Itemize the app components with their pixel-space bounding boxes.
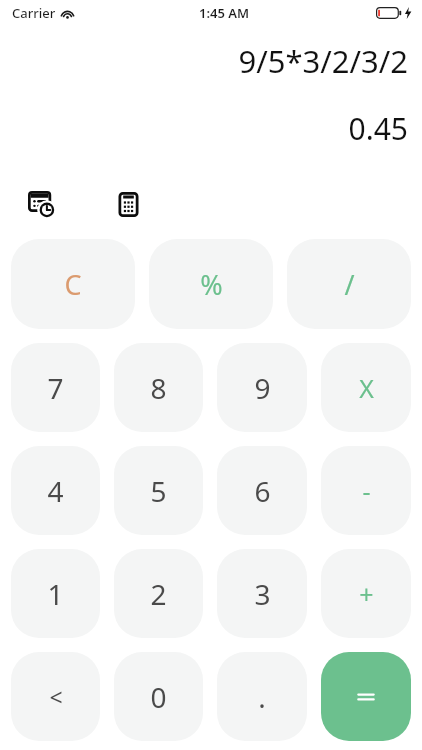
button[interactable]: 4	[11, 446, 100, 535]
button[interactable]: Equals	[321, 652, 411, 741]
staticText: 0.45	[0, 108, 408, 149]
staticText: 5	[150, 472, 167, 510]
staticText: 2	[150, 575, 167, 613]
button[interactable]: 3	[217, 549, 307, 638]
button[interactable]: 7	[11, 343, 100, 432]
button[interactable]: .	[217, 652, 307, 741]
staticText: 9	[254, 369, 271, 407]
button[interactable]: History	[24, 187, 58, 221]
button[interactable]: Calculator	[111, 187, 145, 221]
button[interactable]: 2	[114, 549, 203, 638]
button[interactable]: C	[11, 239, 135, 329]
staticText: C	[64, 266, 82, 303]
button[interactable]: -	[321, 446, 411, 535]
staticText: X	[359, 371, 374, 405]
button[interactable]: 6	[217, 446, 307, 535]
staticText: 8	[150, 369, 167, 407]
staticText: 0	[150, 678, 167, 716]
button[interactable]: <	[11, 652, 100, 741]
button[interactable]: 1	[11, 549, 100, 638]
staticText: .	[258, 678, 266, 716]
button[interactable]: 0	[114, 652, 203, 741]
staticText: 7	[47, 369, 64, 407]
staticText: Carrier	[12, 4, 56, 22]
staticText: 6	[254, 472, 271, 510]
staticText: 9/5*3/2/3/2	[0, 40, 408, 82]
button[interactable]: /	[287, 239, 411, 329]
staticText: /	[344, 266, 355, 303]
staticText: <	[49, 681, 63, 712]
staticText: 3	[254, 575, 271, 613]
button[interactable]: 5	[114, 446, 203, 535]
staticText: +	[359, 577, 374, 611]
staticText: -	[362, 474, 371, 508]
staticText: 4	[47, 472, 64, 510]
button[interactable]: +	[321, 549, 411, 638]
staticText: %	[200, 266, 223, 303]
button[interactable]: %	[149, 239, 273, 329]
staticText: 1	[47, 575, 64, 613]
button[interactable]: X	[321, 343, 411, 432]
button[interactable]: 8	[114, 343, 203, 432]
staticText: 1:45 AM	[199, 4, 250, 22]
button[interactable]: 9	[217, 343, 307, 432]
